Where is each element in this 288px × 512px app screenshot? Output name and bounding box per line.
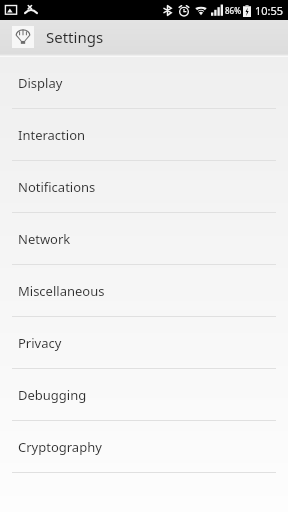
button[interactable]: Notifications — [0, 161, 288, 213]
button[interactable]: App icon — [12, 26, 34, 48]
staticText: 86% — [225, 5, 241, 16]
button[interactable]: Interaction — [0, 109, 288, 161]
staticText: Display — [18, 74, 63, 92]
button[interactable]: Display — [0, 57, 288, 109]
staticText: Notifications — [18, 178, 96, 196]
button[interactable]: Privacy — [0, 317, 288, 369]
button[interactable]: Miscellaneous — [0, 265, 288, 317]
button[interactable]: Debugging — [0, 369, 288, 421]
staticText: Network — [18, 230, 71, 248]
button[interactable]: Network — [0, 213, 288, 265]
staticText: Settings — [46, 27, 104, 47]
staticText: Miscellaneous — [18, 282, 105, 300]
staticText: 10:55 — [255, 3, 284, 18]
staticText: Cryptography — [18, 438, 102, 456]
staticText: Interaction — [18, 126, 86, 144]
staticText: Debugging — [18, 386, 87, 404]
button[interactable]: Cryptography — [0, 421, 288, 473]
staticText: Privacy — [18, 334, 62, 352]
